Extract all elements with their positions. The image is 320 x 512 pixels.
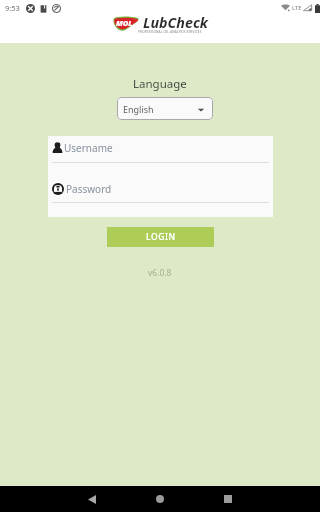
staticText: Username <box>64 141 113 155</box>
staticText: LOGIN <box>146 231 176 243</box>
button[interactable]: LOGIN <box>107 227 214 247</box>
button[interactable]: Password <box>48 177 273 217</box>
staticText: v6.0.8 <box>148 267 172 279</box>
staticText: Language <box>133 76 187 92</box>
staticText: PROFESSIONAL OIL ANALYSIS SERVICES <box>138 30 202 34</box>
button[interactable]: Username <box>48 136 273 177</box>
button[interactable]: Home <box>126 486 194 512</box>
button[interactable]: Recent apps <box>194 486 262 512</box>
staticText: LubCheck <box>143 13 208 32</box>
staticText: 9:53 <box>5 3 20 13</box>
staticText: English <box>123 103 154 115</box>
staticText: Password <box>66 182 112 196</box>
staticText: LTE <box>292 4 302 12</box>
button[interactable]: English <box>117 97 213 120</box>
staticText: MOL <box>116 18 133 28</box>
button[interactable]: Back <box>58 486 126 512</box>
